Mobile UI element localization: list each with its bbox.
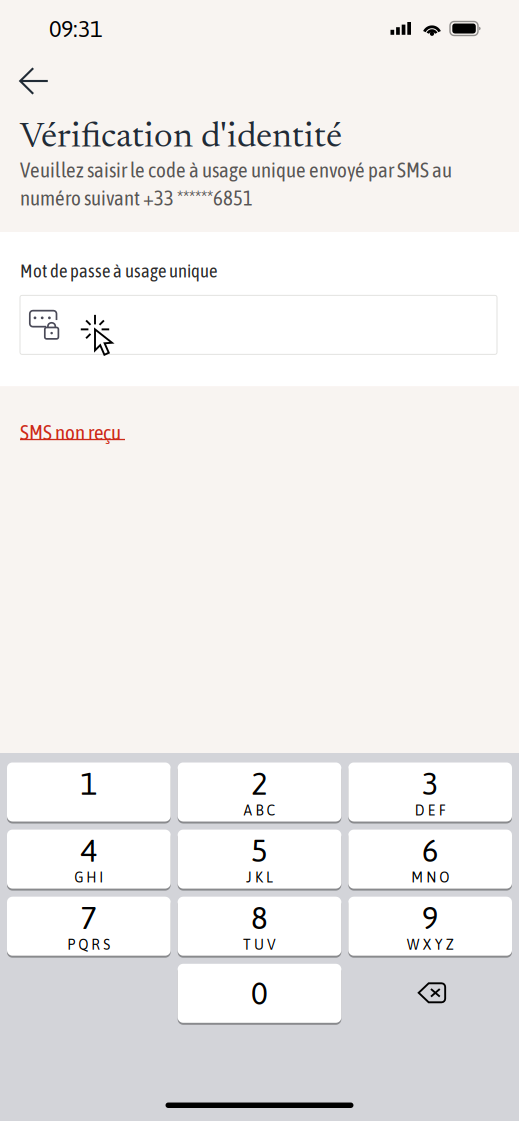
button[interactable]: SMS non reçu	[0, 386, 125, 454]
staticText: G H I	[74, 869, 103, 885]
staticText: J K L	[246, 869, 273, 885]
button[interactable]: 8	[178, 897, 341, 958]
staticText: 0	[251, 975, 268, 1011]
staticText: 1	[80, 765, 97, 801]
staticText: 5	[251, 833, 268, 868]
button[interactable]: 9	[348, 897, 512, 958]
staticText: 8	[251, 900, 268, 936]
staticText: 6	[422, 833, 439, 868]
staticText: 09:31	[49, 15, 102, 42]
staticText: A B C	[243, 802, 275, 818]
staticText: 3	[422, 765, 439, 801]
staticText: P Q R S	[67, 937, 110, 953]
staticText: M N O	[411, 869, 449, 885]
staticText: D E F	[415, 802, 446, 818]
staticText: 7	[80, 900, 97, 936]
staticText: Vérification d'identité	[20, 120, 342, 156]
button[interactable]: 5	[178, 830, 341, 891]
staticText: 4	[80, 833, 97, 868]
button[interactable]: 1	[7, 762, 171, 823]
button[interactable]: 0	[178, 964, 341, 1025]
staticText: numéro suivant +33 ******6851	[20, 186, 253, 210]
button[interactable]: 2	[178, 762, 341, 823]
button[interactable]: 3	[348, 762, 512, 823]
button[interactable]: Retour	[0, 54, 65, 104]
staticText: T U V	[243, 937, 276, 953]
button[interactable]: 4	[7, 830, 171, 891]
button[interactable]: 6	[348, 830, 512, 891]
staticText: Mot de passe à usage unique	[20, 260, 217, 281]
staticText: SMS non reçu	[20, 420, 121, 444]
staticText: W X Y Z	[407, 937, 454, 953]
staticText: 2	[251, 765, 268, 801]
button[interactable]: Supprimer	[348, 964, 512, 1025]
button[interactable]: 7	[7, 897, 171, 958]
staticText: 9	[422, 900, 439, 936]
staticText: Veuillez saisir le code à usage unique e…	[20, 158, 452, 182]
